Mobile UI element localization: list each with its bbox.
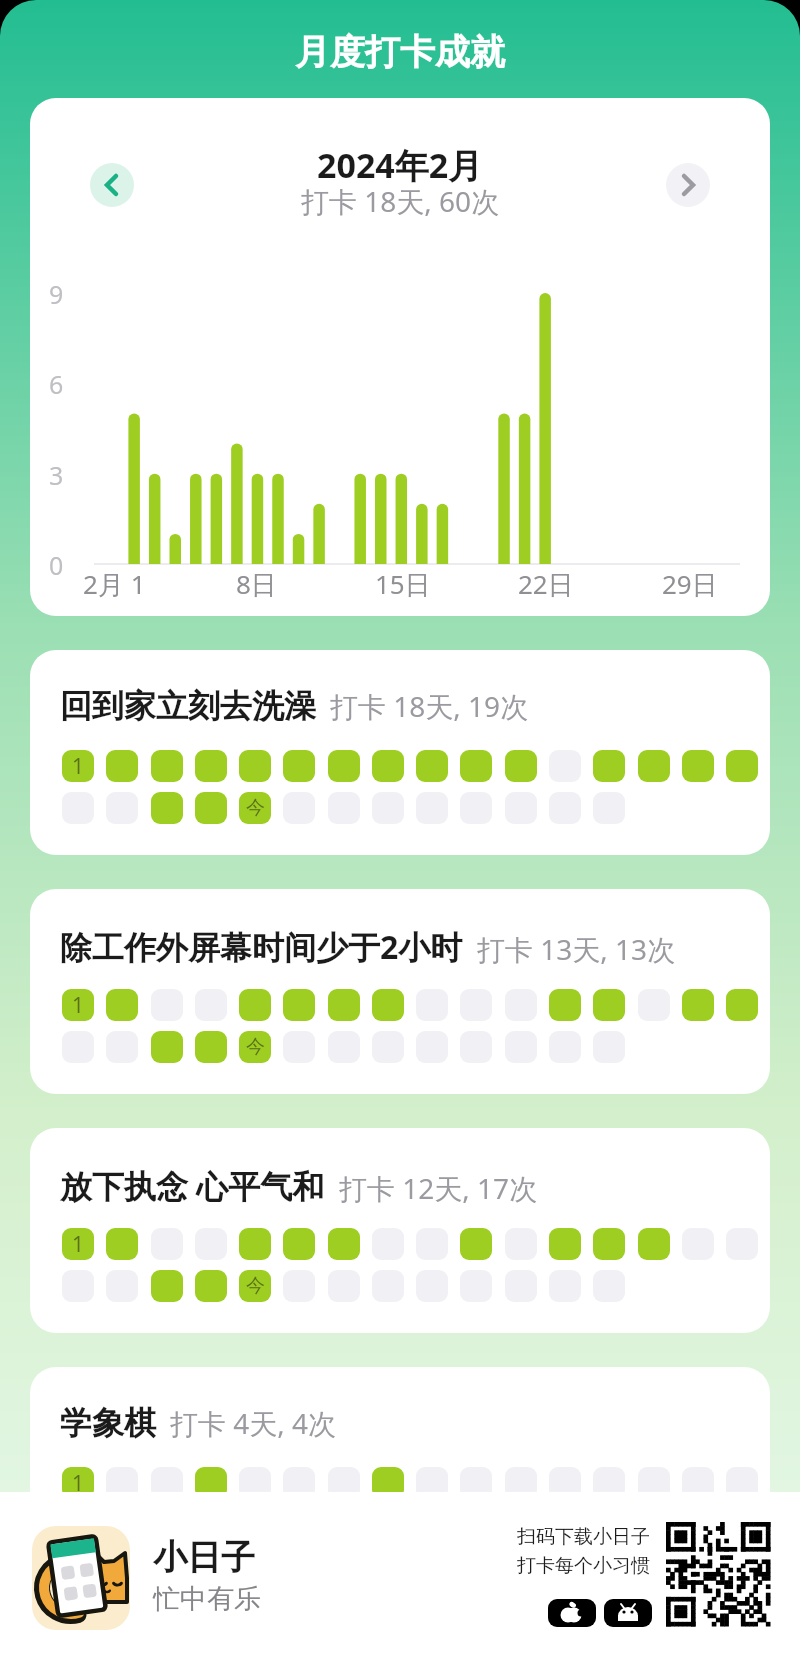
button[interactable]: 回到家立刻去洗澡 bbox=[30, 650, 770, 855]
staticText: 29日 bbox=[662, 566, 718, 598]
staticText: 扫码下载小日子 bbox=[517, 1525, 650, 1549]
button[interactable] bbox=[604, 1599, 652, 1627]
button[interactable]: 放下执念 心平气和 bbox=[30, 1128, 770, 1333]
staticText: 小日子 bbox=[153, 1536, 255, 1579]
staticText: 学象棋 bbox=[60, 1403, 156, 1443]
staticText: 月度打卡成就 bbox=[295, 30, 505, 74]
staticText: 除工作外屏幕时间少于2小时 bbox=[60, 925, 463, 969]
staticText: 打卡 13天, 13次 bbox=[477, 930, 676, 968]
staticText: 打卡 12天, 17次 bbox=[339, 1169, 538, 1207]
staticText: 今 bbox=[246, 1274, 265, 1298]
button[interactable] bbox=[666, 163, 710, 207]
button[interactable]: 除工作外屏幕时间少于2小时 bbox=[30, 889, 770, 1094]
staticText: 2月 1 bbox=[83, 566, 146, 598]
staticText: 15日 bbox=[375, 566, 431, 598]
button[interactable]: 学象棋 bbox=[30, 1367, 770, 1572]
staticText: 0 bbox=[49, 548, 64, 580]
staticText: 3 bbox=[49, 458, 64, 490]
staticText: 忙中有乐 bbox=[153, 1582, 261, 1616]
staticText: 8日 bbox=[236, 566, 277, 598]
staticText: 22日 bbox=[518, 566, 574, 598]
staticText: 1 bbox=[72, 1469, 85, 1498]
staticText: 打卡每个小习惯 bbox=[517, 1554, 650, 1578]
staticText: 2024年2月 bbox=[317, 142, 483, 188]
staticText: 9 bbox=[49, 277, 64, 309]
staticText: 打卡 18天, 19次 bbox=[330, 687, 529, 725]
staticText: 放下执念 心平气和 bbox=[60, 1164, 325, 1208]
button[interactable] bbox=[90, 163, 134, 207]
staticText: 1 bbox=[72, 991, 85, 1020]
button[interactable] bbox=[32, 1526, 130, 1630]
staticText: 6 bbox=[49, 367, 64, 399]
staticText: 1 bbox=[72, 1230, 85, 1259]
button[interactable] bbox=[548, 1599, 596, 1627]
staticText: 今 bbox=[246, 1035, 265, 1059]
staticText: 打卡 4天, 4次 bbox=[170, 1404, 337, 1442]
staticText: 1 bbox=[72, 752, 85, 781]
staticText: 打卡 18天, 60次 bbox=[301, 182, 500, 220]
staticText: 回到家立刻去洗澡 bbox=[60, 686, 316, 726]
staticText: 今 bbox=[246, 796, 265, 820]
